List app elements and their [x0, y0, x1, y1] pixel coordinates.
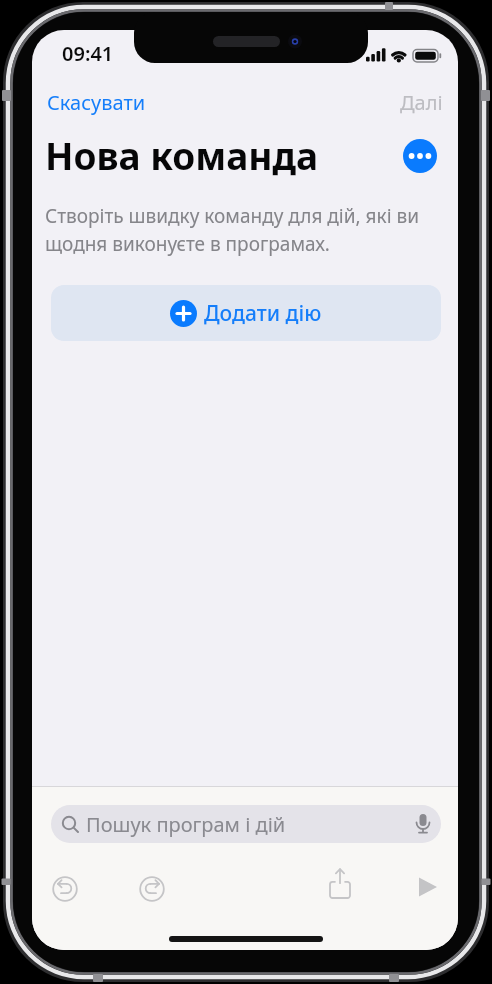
- staticText: Додати дію: [204, 299, 322, 328]
- staticText: Пошук програм і дій: [86, 811, 286, 838]
- button[interactable]: [403, 139, 437, 173]
- staticText: Скасувати: [47, 89, 146, 116]
- staticText: Створіть швидку команду для дій, які ви …: [45, 203, 420, 257]
- button[interactable]: Далі: [393, 82, 450, 123]
- button[interactable]: Додати дію: [51, 285, 441, 341]
- staticText: Нова команда: [45, 130, 319, 180]
- button[interactable]: Пошук програм і дій: [51, 805, 441, 843]
- button[interactable]: [139, 876, 165, 902]
- button[interactable]: Скасувати: [40, 82, 153, 123]
- button[interactable]: [325, 868, 355, 898]
- button[interactable]: [52, 876, 78, 902]
- staticText: 09:41: [62, 40, 114, 67]
- button[interactable]: [417, 875, 443, 901]
- staticText: Далі: [400, 89, 443, 116]
